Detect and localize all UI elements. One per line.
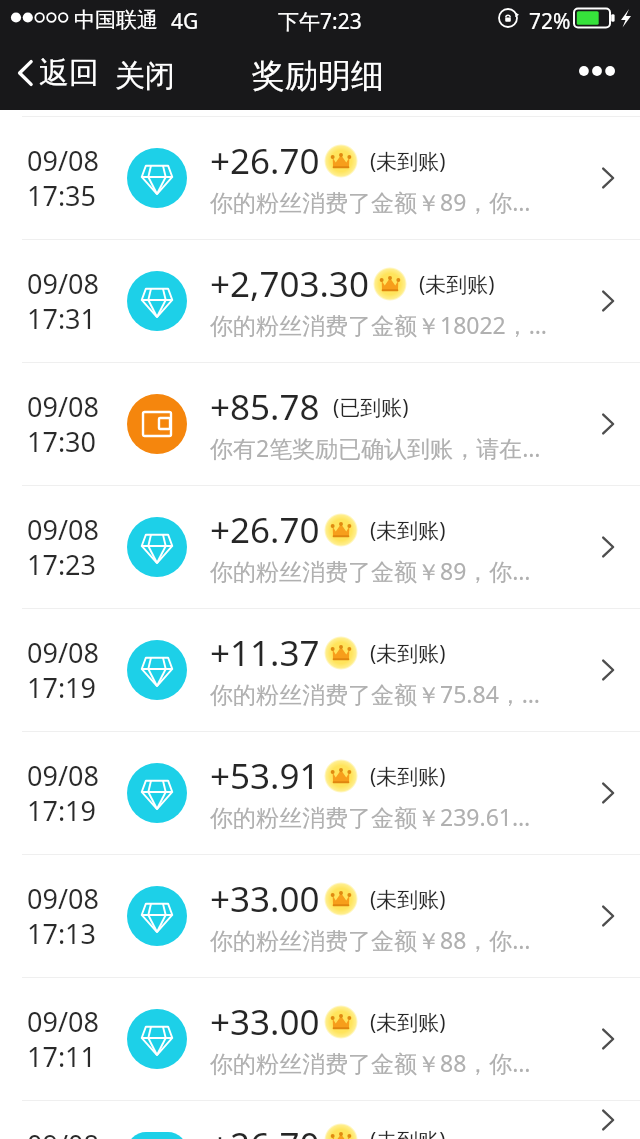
staticText: 72%: [529, 7, 571, 36]
other: Details: [600, 780, 616, 806]
staticText: +26.70: [210, 1121, 320, 1139]
staticText: 4G: [171, 7, 199, 36]
staticText: 17:30: [27, 423, 97, 460]
staticText: 17:11: [27, 1038, 97, 1075]
button[interactable]: 09/08: [0, 363, 640, 485]
other: Details: [600, 1026, 616, 1052]
staticText: (未到账): [370, 639, 446, 668]
staticText: (未到账): [370, 147, 446, 176]
other: Details: [600, 288, 616, 314]
button[interactable]: 09/08: [0, 240, 640, 362]
staticText: (未到账): [370, 885, 446, 914]
staticText: (未到账): [370, 516, 446, 545]
other: Details: [600, 903, 616, 929]
staticText: 你的粉丝消费了金额￥75.84，…: [210, 678, 540, 709]
staticText: 17:23: [27, 546, 97, 583]
staticText: 09/08: [27, 757, 99, 794]
staticText: 17:19: [27, 792, 97, 829]
button[interactable]: 返回: [10, 50, 107, 96]
staticText: 09/08: [27, 511, 99, 548]
staticText: +85.78: [210, 383, 320, 431]
staticText: 你的粉丝消费了金额￥89，你…: [210, 555, 531, 586]
staticText: 17:19: [27, 669, 97, 706]
staticText: +26.70: [210, 506, 320, 554]
staticText: +53.91: [210, 752, 320, 800]
staticText: 09/08: [27, 1003, 99, 1040]
staticText: 返回: [39, 54, 99, 92]
staticText: 09/08: [27, 265, 99, 302]
staticText: (未到账): [370, 1008, 446, 1037]
staticText: (未到账): [419, 270, 495, 299]
staticText: 09/08: [27, 880, 99, 917]
staticText: 下午7:23: [278, 7, 362, 36]
staticText: +26.70: [210, 137, 320, 185]
staticText: +33.00: [210, 998, 320, 1046]
staticText: 09/08: [27, 388, 99, 425]
other: Details: [600, 165, 616, 191]
other: Details: [600, 657, 616, 683]
button[interactable]: 09/08: [0, 609, 640, 731]
button[interactable]: More options: [566, 52, 628, 90]
button[interactable]: 09/08: [0, 486, 640, 608]
other: Details: [600, 1107, 616, 1133]
staticText: +33.00: [210, 875, 320, 923]
other: Details: [600, 411, 616, 437]
staticText: (已到账): [333, 393, 409, 422]
staticText: 你的粉丝消费了金额￥89，你…: [210, 186, 531, 217]
staticText: 09/08: [27, 1126, 99, 1139]
staticText: 17:35: [27, 177, 97, 214]
other: Details: [600, 534, 616, 560]
staticText: (未到账): [370, 762, 446, 791]
button[interactable]: 09/08: [0, 855, 640, 977]
staticText: 你的粉丝消费了金额￥88，你…: [210, 1047, 531, 1078]
staticText: 你的粉丝消费了金额￥88，你…: [210, 924, 531, 955]
staticText: 你的粉丝消费了金额￥239.61…: [210, 801, 531, 832]
staticText: 你有2笔奖励已确认到账，请在…: [210, 432, 541, 463]
staticText: +11.37: [210, 629, 320, 677]
staticText: (未到账): [370, 1126, 446, 1139]
staticText: 中国联通: [74, 7, 158, 33]
staticText: 奖励明细: [252, 55, 384, 97]
staticText: 关闭: [115, 57, 175, 95]
button[interactable]: 09/08: [0, 117, 640, 239]
staticText: +2,703.30: [210, 260, 369, 308]
staticText: 09/08: [27, 142, 99, 179]
staticText: 17:13: [27, 915, 97, 952]
button[interactable]: 09/08: [0, 978, 640, 1100]
button[interactable]: 09/08: [0, 732, 640, 854]
button[interactable]: 关闭: [107, 50, 183, 102]
staticText: 09/08: [27, 634, 99, 671]
staticText: 17:31: [27, 300, 97, 337]
staticText: 你的粉丝消费了金额￥18022，…: [210, 309, 547, 340]
button[interactable]: 09/08: [0, 1101, 640, 1139]
